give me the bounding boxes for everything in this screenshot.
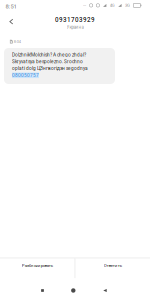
staticText: Украина — [66, 25, 83, 30]
button[interactable]: Back — [97, 284, 113, 297]
staticText: Skryvatsya bespolezno. Srochno — [12, 59, 83, 64]
staticText: 4G — [110, 3, 115, 8]
staticText: 8:51 — [5, 3, 16, 10]
staticText: oplati dolg ЦЗнгвогідзн segodnya — [12, 66, 88, 71]
staticText: Разблокировать — [22, 263, 53, 268]
staticText: 0931703929 — [55, 16, 95, 23]
button[interactable]: Ответить — [75, 258, 150, 278]
button[interactable]: Back — [2, 14, 21, 30]
staticText: Dolzhnik!Molchish? A chego zhdal? — [12, 52, 86, 57]
staticText: 080050757 — [12, 72, 39, 78]
staticText: 8:04 — [14, 39, 21, 44]
button[interactable]: Home — [65, 284, 81, 297]
staticText: Ответить — [104, 263, 122, 268]
button[interactable]: Recent apps — [34, 284, 50, 297]
staticText: ··· — [83, 3, 86, 8]
button[interactable]: Разблокировать — [0, 258, 75, 278]
staticText: 3G — [125, 3, 130, 8]
